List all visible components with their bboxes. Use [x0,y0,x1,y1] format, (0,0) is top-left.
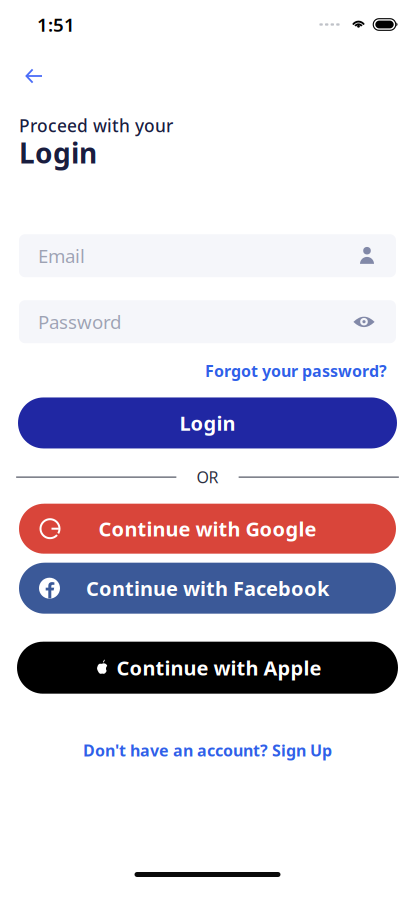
staticText: Continue with Apple [116,654,321,681]
staticText: Continue with Google [98,515,316,542]
staticText: Password [38,309,121,334]
button[interactable]: Don't have an account? Sign Up [83,740,332,761]
button[interactable]: Forgot your password? [205,360,387,381]
staticText: Login [19,134,97,171]
staticText: Proceed with your [19,114,173,137]
button[interactable]: Continue with Apple [17,642,398,694]
staticText: Forgot your password? [205,360,387,381]
button[interactable]: Continue with Facebook [19,563,396,614]
staticText: Email [38,243,85,268]
staticText: OR [196,466,218,488]
button[interactable]: Continue with Google [19,504,396,554]
button[interactable]: Back [12,60,56,92]
staticText: 1:51 [37,12,75,37]
staticText: Continue with Facebook [86,575,329,601]
button[interactable]: Login [18,397,397,448]
staticText: Don't have an account? Sign Up [83,740,332,761]
staticText: Login [179,410,235,436]
